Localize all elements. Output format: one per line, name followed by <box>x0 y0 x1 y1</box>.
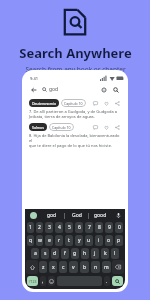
button[interactable]: a <box>31 248 39 259</box>
button[interactable]: 6 <box>75 222 83 233</box>
staticText: 3 <box>48 224 51 231</box>
button[interactable]: m <box>102 261 111 273</box>
button[interactable]: w <box>36 235 43 246</box>
button[interactable]: Back <box>29 85 39 95</box>
staticText: god <box>49 86 59 93</box>
button[interactable]: Favorite <box>102 123 110 131</box>
button[interactable]: Deuteronomio <box>29 99 59 107</box>
staticText: q <box>29 237 33 244</box>
button[interactable]: good <box>89 210 112 221</box>
button[interactable]: Emoji <box>48 276 55 286</box>
staticText: t <box>68 237 70 244</box>
button[interactable]: . <box>104 276 110 286</box>
staticText: m <box>104 264 109 271</box>
staticText: good <box>94 212 107 219</box>
button[interactable]: u <box>85 235 93 246</box>
staticText: ?123 <box>29 279 37 284</box>
staticText: . <box>106 278 108 285</box>
button[interactable]: l <box>111 248 119 259</box>
staticText: 1 <box>29 224 32 231</box>
staticText: , <box>42 278 44 285</box>
staticText: x <box>52 264 55 271</box>
button[interactable]: i <box>95 235 103 246</box>
staticText: n <box>94 264 98 271</box>
button[interactable]: c <box>59 261 67 273</box>
button[interactable]: z <box>39 261 47 273</box>
staticText: Search from any book or chapter <box>25 65 126 74</box>
button[interactable]: Share <box>113 123 121 131</box>
button[interactable]: k <box>101 248 109 259</box>
button[interactable]: 0 <box>115 222 123 233</box>
button[interactable]: Assistant <box>26 210 40 221</box>
button[interactable]: h <box>81 248 89 259</box>
button[interactable]: Share <box>113 99 121 107</box>
button[interactable]: e <box>45 235 53 246</box>
button[interactable]: 2 <box>36 222 43 233</box>
staticText: 0 <box>118 224 121 231</box>
button[interactable]: , <box>40 276 46 286</box>
staticText: 9 <box>108 224 111 231</box>
button[interactable]: Search <box>111 85 121 95</box>
button[interactable]: g <box>71 248 79 259</box>
staticText: j <box>94 250 96 257</box>
button[interactable]: r <box>55 235 63 246</box>
button[interactable]: Search <box>112 276 123 286</box>
button[interactable]: 1 <box>27 222 34 233</box>
button[interactable]: v <box>69 261 78 273</box>
staticText: k <box>104 250 107 257</box>
staticText: 6 <box>78 224 81 231</box>
button[interactable]: p <box>115 235 123 246</box>
button[interactable]: Capítulo 10 <box>49 123 74 131</box>
button[interactable]: s <box>41 248 49 259</box>
button[interactable]: ?123 <box>27 276 38 286</box>
button[interactable]: y <box>75 235 83 246</box>
button[interactable]: Salmos <box>29 123 47 131</box>
button[interactable]: f <box>61 248 69 259</box>
staticText: Salmos <box>32 125 44 130</box>
button[interactable]: j <box>91 248 99 259</box>
button[interactable]: d <box>51 248 59 259</box>
button[interactable]: 4 <box>55 222 63 233</box>
staticText: god <box>47 212 57 219</box>
button[interactable]: Favorite <box>102 99 110 107</box>
staticText: Deuteronomio <box>32 101 56 106</box>
button[interactable]: b <box>80 261 89 273</box>
button[interactable]: Settings <box>99 85 109 95</box>
staticText: a <box>34 250 37 257</box>
staticText: 8. Hija de Babilonia la desolada, bienav… <box>29 133 121 143</box>
staticText: y <box>78 237 81 244</box>
button[interactable]: 3 <box>45 222 53 233</box>
staticText: God <box>72 212 82 219</box>
staticText: z <box>42 264 45 271</box>
staticText: r <box>58 237 61 244</box>
button[interactable]: 9 <box>105 222 113 233</box>
button[interactable]: t <box>65 235 73 246</box>
button[interactable]: God <box>65 210 88 221</box>
staticText: s <box>44 250 47 257</box>
button[interactable]: Backspace <box>112 260 124 274</box>
button[interactable]: Comment <box>91 123 99 131</box>
button[interactable]: n <box>91 261 100 273</box>
staticText: h <box>83 250 87 257</box>
staticText: d <box>53 250 57 257</box>
staticText: Search Anywhere <box>19 44 132 62</box>
staticText: Capítulo 10 <box>64 101 83 106</box>
button[interactable]: o <box>105 235 113 246</box>
staticText: 2 <box>38 224 41 231</box>
button[interactable]: Voice input <box>112 210 124 221</box>
button[interactable]: Comment <box>91 99 99 107</box>
button[interactable]: x <box>49 261 57 273</box>
staticText: c <box>62 264 65 271</box>
button[interactable]: 5 <box>65 222 73 233</box>
button[interactable]: god <box>40 210 64 221</box>
button[interactable]: 8 <box>95 222 103 233</box>
staticText: 9:41 <box>30 76 38 81</box>
button[interactable]: Capítulo 10 <box>61 99 86 107</box>
button[interactable]: q <box>27 235 34 246</box>
button[interactable]: god <box>42 84 99 95</box>
staticText: u <box>87 237 91 244</box>
button[interactable]: Shift <box>26 260 38 274</box>
button[interactable]: 7 <box>85 222 93 233</box>
staticText: que te diere el pago de lo que tú nos hi… <box>29 143 112 148</box>
